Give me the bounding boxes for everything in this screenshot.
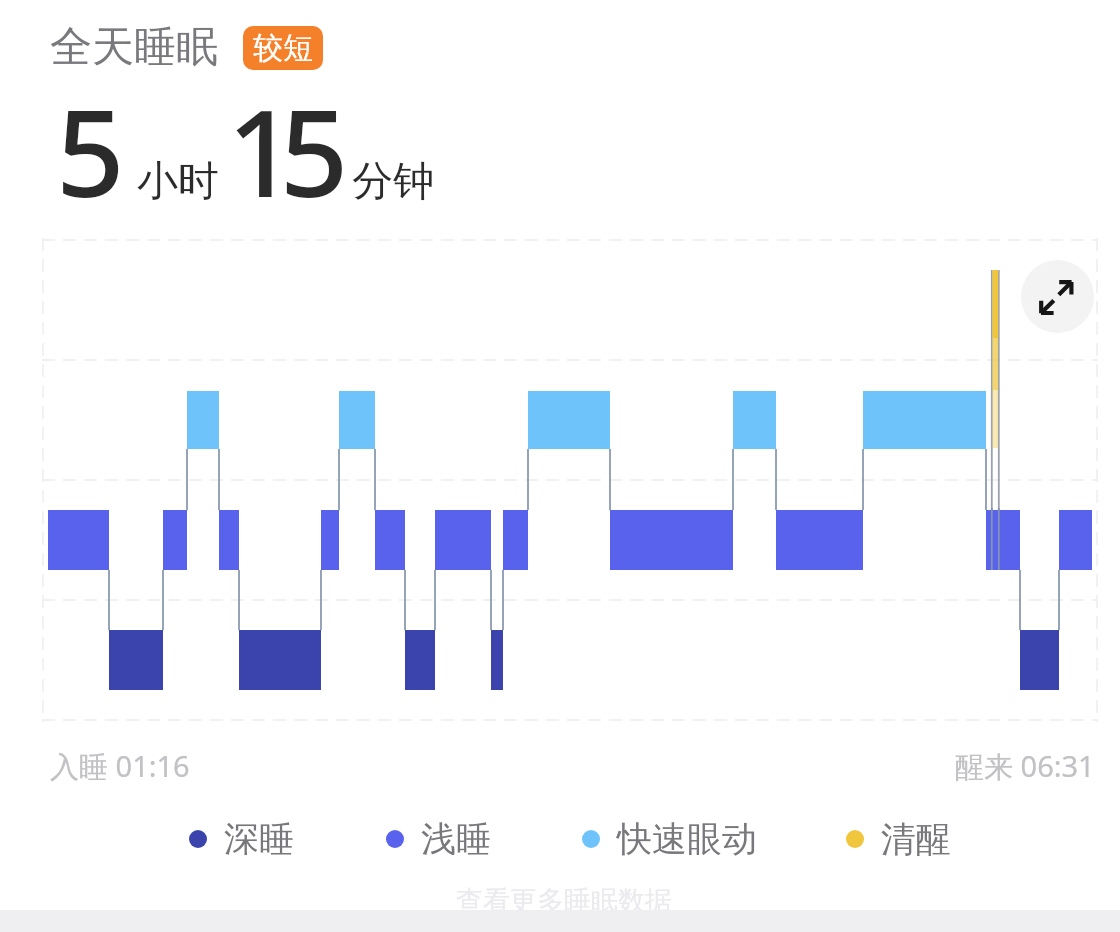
staticText: 5 [56,69,125,232]
button[interactable]: 深睡 [189,817,294,861]
button[interactable]: Sleep stages hypnogram [42,234,1098,726]
staticText: 全天睡眠 [50,21,218,74]
button[interactable]: 清醒 [846,817,951,861]
button[interactable]: Expand chart [1021,260,1094,333]
staticText: 深睡 [224,817,294,861]
staticText: 清醒 [881,817,951,861]
staticText: 快速眼动 [617,817,757,861]
staticText: 15 [227,69,333,232]
button[interactable]: 浅睡 [386,817,491,861]
button[interactable]: 快速眼动 [582,817,757,861]
staticText: 浅睡 [421,817,491,861]
button[interactable]: 较短 [243,26,323,70]
staticText: 分钟 [352,156,434,208]
button[interactable]: 查看更多睡眠数据 [456,884,672,918]
staticText: 较短 [253,29,313,67]
staticText: 入睡 01:16 [50,746,190,786]
staticText: 查看更多睡眠数据 [456,884,672,918]
staticText: 醒来 06:31 [955,746,1095,786]
staticText: 小时 [137,156,219,208]
